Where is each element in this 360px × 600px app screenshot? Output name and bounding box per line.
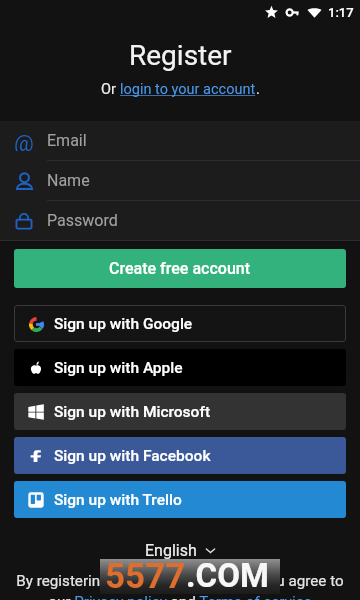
button[interactable]: Password [0, 201, 360, 240]
staticText: Sign up with Google [54, 315, 193, 333]
staticText: 1:17 [328, 5, 354, 20]
button[interactable]: Sign up with Google [14, 305, 346, 342]
staticText: login to your account [120, 81, 256, 98]
button[interactable]: Sign up with Facebook [14, 437, 346, 474]
staticText: Sign up with Microsoft [54, 403, 211, 421]
button[interactable]: English [145, 541, 216, 560]
staticText: Create free account [109, 259, 251, 278]
button[interactable]: Sign up with Trello [14, 481, 346, 518]
staticText: @ [14, 131, 34, 151]
staticText: Or [101, 81, 120, 98]
staticText: Sign up with Apple [54, 359, 183, 377]
staticText: . [256, 81, 260, 98]
staticText: Email [47, 131, 87, 150]
staticText: By registering an Atlassian account, you… [0, 572, 360, 600]
button[interactable]: Sign up with Microsoft [14, 393, 346, 430]
staticText: English [145, 541, 197, 560]
staticText: Sign up with Facebook [54, 447, 211, 465]
button[interactable]: Sign up with Apple [14, 349, 346, 386]
staticText: 5577 [105, 556, 186, 591]
staticText: Name [47, 171, 90, 190]
staticText: Register [129, 39, 232, 72]
button[interactable]: Create free account [14, 249, 346, 288]
staticText: .COM [186, 556, 269, 591]
button[interactable]: login to your account [120, 81, 256, 98]
button[interactable]: @ [0, 121, 360, 160]
staticText: Sign up with Trello [54, 491, 182, 509]
button[interactable]: Name [0, 161, 360, 200]
staticText: Password [47, 211, 118, 230]
